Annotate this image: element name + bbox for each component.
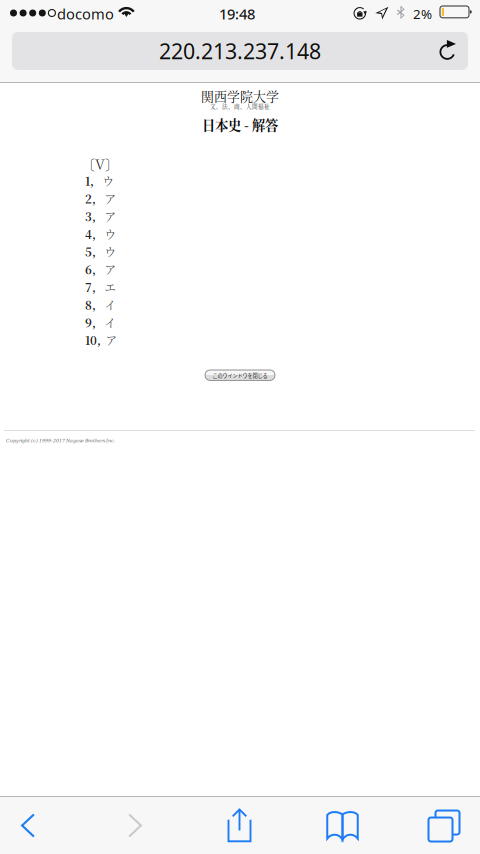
staticText: ウ [104, 226, 116, 242]
button[interactable]: Forward [107, 797, 163, 854]
button[interactable]: Tabs [412, 794, 468, 851]
staticText: 3, [85, 208, 96, 224]
staticText: 10, [85, 332, 101, 348]
staticText: 19:48 [219, 4, 255, 23]
staticText: ウ [104, 243, 116, 260]
button[interactable]: Share [211, 797, 267, 854]
staticText: 220.213.237.148 [159, 37, 321, 65]
staticText: 6, [85, 261, 96, 278]
staticText: ウ [102, 173, 114, 189]
staticText: 4, [85, 226, 96, 242]
staticText: Copyright (c) 1999-2017 Nagase Brothers … [6, 438, 115, 443]
staticText: 関西学院大学 [201, 86, 279, 105]
staticText: 9, [85, 314, 96, 331]
staticText: docomo [57, 4, 114, 23]
staticText: このウインドウを閉じる [212, 372, 267, 379]
staticText: 7, [85, 279, 96, 295]
staticText: 2% [413, 5, 432, 23]
staticText: ア [105, 332, 117, 348]
button[interactable]: このウインドウを閉じる [205, 370, 275, 380]
staticText: 〔V〕 [81, 153, 119, 173]
staticText: ア [104, 190, 116, 207]
staticText: 日本史 - 解答 [202, 115, 278, 134]
staticText: 8, [85, 296, 96, 313]
staticText: エ [104, 279, 116, 295]
staticText: イ [104, 296, 116, 313]
button[interactable]: Back [0, 797, 56, 854]
staticText: 5, [85, 243, 96, 260]
button[interactable]: Bookmarks [314, 797, 370, 854]
staticText: 2, [85, 190, 96, 207]
staticText: 1, [85, 173, 94, 189]
staticText: ア [104, 208, 116, 224]
button[interactable]: 220.213.237.148 [12, 32, 468, 70]
staticText: イ [104, 314, 116, 331]
button[interactable]: Reload [429, 33, 466, 67]
staticText: 文、法、商、人間福祉 [210, 102, 270, 110]
staticText: ア [104, 261, 116, 278]
